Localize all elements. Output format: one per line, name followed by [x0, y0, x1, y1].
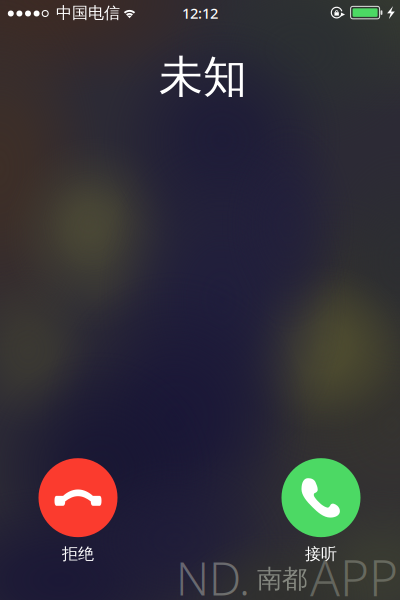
staticText: 中国电信	[56, 3, 120, 23]
staticText: 接听	[305, 544, 337, 564]
staticText: 未知	[159, 50, 247, 104]
staticText: ND.	[176, 548, 250, 600]
staticText: 南都	[257, 563, 307, 594]
staticText: APP	[310, 544, 398, 600]
staticText: 拒绝	[62, 544, 94, 564]
staticText: 12:12	[182, 3, 218, 23]
button[interactable]: 拒绝 Decline	[38, 458, 117, 564]
button[interactable]: 接听 Answer	[281, 458, 360, 564]
